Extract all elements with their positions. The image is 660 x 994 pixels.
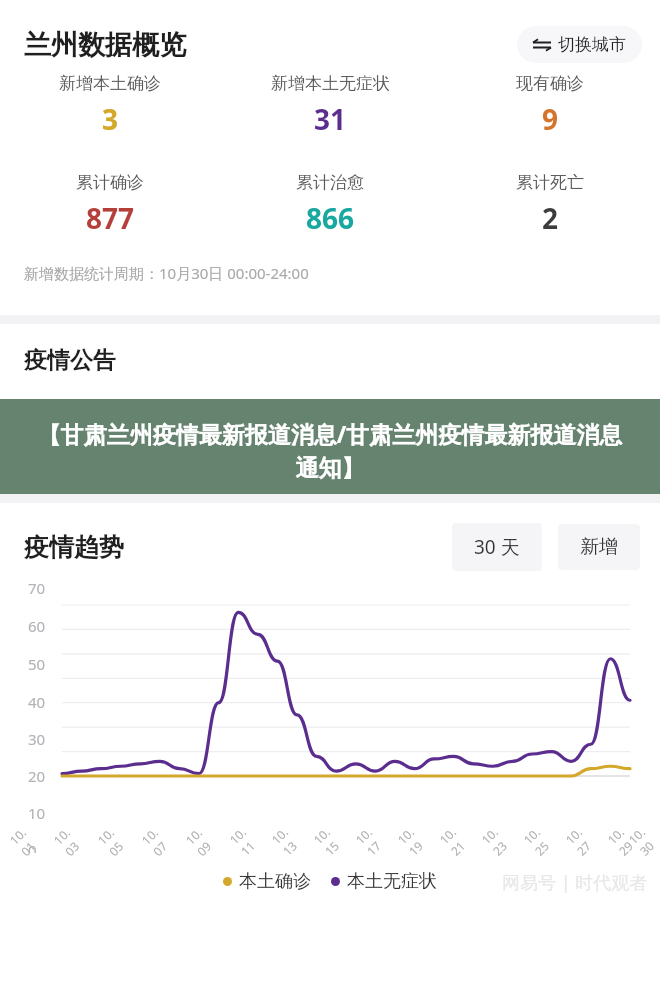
staticText: 20 [28, 766, 46, 786]
staticText: 30 [28, 729, 46, 749]
button[interactable]: 现有确诊 [440, 73, 660, 138]
staticText: 60 [28, 616, 46, 636]
staticText: 31 [314, 100, 347, 138]
staticText: 10.05 [94, 821, 132, 859]
staticText: 10.09 [182, 821, 220, 859]
staticText: 新增本土确诊 [59, 73, 161, 94]
staticText: 2 [542, 199, 559, 237]
button[interactable]: 切换城市 [517, 26, 642, 63]
staticText: 网易号 | 时代观者 [502, 870, 648, 895]
staticText: 10.25 [520, 821, 557, 859]
staticText: 877 [86, 199, 135, 237]
staticText: 累计死亡 [516, 172, 584, 193]
staticText: 疫情公告 [24, 346, 116, 375]
button[interactable]: 累计确诊 [0, 172, 220, 237]
staticText: 兰州数据概览 [24, 28, 186, 62]
staticText: 本土无症状 [347, 870, 437, 893]
staticText: 10.01 [6, 821, 44, 859]
staticText: 新增 [580, 535, 618, 559]
staticText: 10.17 [352, 821, 389, 859]
staticText: 10 [28, 803, 46, 823]
staticText: 累计确诊 [76, 172, 144, 193]
staticText: 10.23 [478, 821, 515, 859]
staticText: 40 [28, 692, 46, 712]
staticText: 30 天 [474, 534, 520, 560]
staticText: 50 [28, 654, 46, 674]
staticText: 10.21 [436, 821, 473, 859]
button[interactable]: 兰州昨增本土 3+31 [0, 403, 660, 429]
staticText: 70 [28, 578, 46, 598]
staticText: 10.15 [310, 821, 347, 859]
staticText: 累计治愈 [296, 172, 364, 193]
button[interactable]: 30 天 [452, 523, 542, 571]
staticText: 10.30 [625, 821, 660, 859]
staticText: 本土确诊 [239, 870, 311, 893]
staticText: 疫情趋势 [24, 532, 124, 563]
staticText: 10.19 [394, 821, 431, 859]
staticText: 【甘肃兰州疫情最新报道消息/甘肃兰州疫情最新报道消息通知】 [30, 418, 630, 483]
staticText: 切换城市 [558, 34, 626, 55]
staticText: 866 [306, 199, 355, 237]
staticText: 9 [542, 100, 559, 138]
staticText: 10.29 [604, 821, 641, 859]
button[interactable]: 累计死亡 [440, 172, 660, 237]
staticText: 10.07 [138, 821, 176, 859]
staticText: 新增本土无症状 [271, 73, 390, 94]
staticText: 兰州昨增本土 3+31 [45, 403, 208, 429]
staticText: 10.13 [268, 821, 305, 859]
staticText: 3 [102, 100, 119, 138]
button[interactable]: 新增本土确诊 [0, 73, 220, 138]
button[interactable]: 新增本土无症状 [220, 73, 440, 138]
staticText: 10.11 [226, 821, 263, 859]
staticText: 10.03 [50, 821, 88, 859]
staticText: 0 [28, 840, 37, 853]
staticText: 现有确诊 [516, 73, 584, 94]
staticText: 新增数据统计周期：10月30日 00:00-24:00 [24, 263, 309, 283]
button[interactable]: 累计治愈 [220, 172, 440, 237]
staticText: 10.27 [562, 821, 599, 859]
button[interactable]: 新增 [558, 524, 640, 570]
